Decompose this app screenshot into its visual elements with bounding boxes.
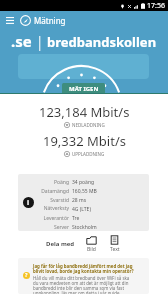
staticText: i [27, 198, 30, 208]
staticText: Server [41, 224, 69, 231]
button[interactable]: Text [107, 235, 122, 253]
button[interactable]: ? [18, 258, 149, 294]
staticText: 34 poäng [72, 179, 95, 186]
staticText: Text [110, 246, 120, 253]
staticText: MÄT IGEN [69, 85, 99, 93]
staticText: Datamängd [41, 188, 69, 195]
staticText: Dela med [46, 240, 75, 248]
staticText: ? [25, 272, 28, 279]
staticText: 19,332 Mbit/s [43, 132, 126, 150]
staticText: Jag får för låg bandbredd jämfört med de… [33, 263, 134, 275]
staticText: Poäng [41, 179, 69, 186]
staticText: 123,184 Mbit/s [39, 103, 130, 121]
button[interactable]: Speed test [18, 13, 32, 27]
staticText: bredbandskollen [47, 33, 157, 51]
staticText: .se [11, 31, 32, 51]
staticText: Bild [87, 246, 96, 253]
button[interactable]: Info [23, 197, 34, 208]
staticText: 17:56 [147, 1, 165, 11]
staticText: Svarstid [41, 197, 69, 204]
staticText: UPPLADDNING [72, 151, 105, 157]
staticText: | [32, 32, 47, 51]
staticText: Nätverkstyp [41, 205, 69, 214]
staticText: Håll du vill mäta ditt bredband över WiF… [33, 275, 130, 294]
staticText: Tre [72, 215, 80, 222]
staticText: NEDLADDNING [72, 122, 105, 128]
staticText: 4G (LTE) [72, 206, 91, 213]
staticText: 28 ms [72, 197, 87, 204]
staticText: Leverantör [41, 215, 69, 222]
staticText: Mätning [34, 15, 66, 26]
staticText: Stockholm [72, 224, 97, 231]
button[interactable]: Bild [84, 235, 99, 253]
button[interactable]: Menu [3, 13, 17, 27]
button[interactable]: MÄT IGEN [62, 83, 105, 94]
staticText: 160,55 MB [72, 188, 97, 195]
